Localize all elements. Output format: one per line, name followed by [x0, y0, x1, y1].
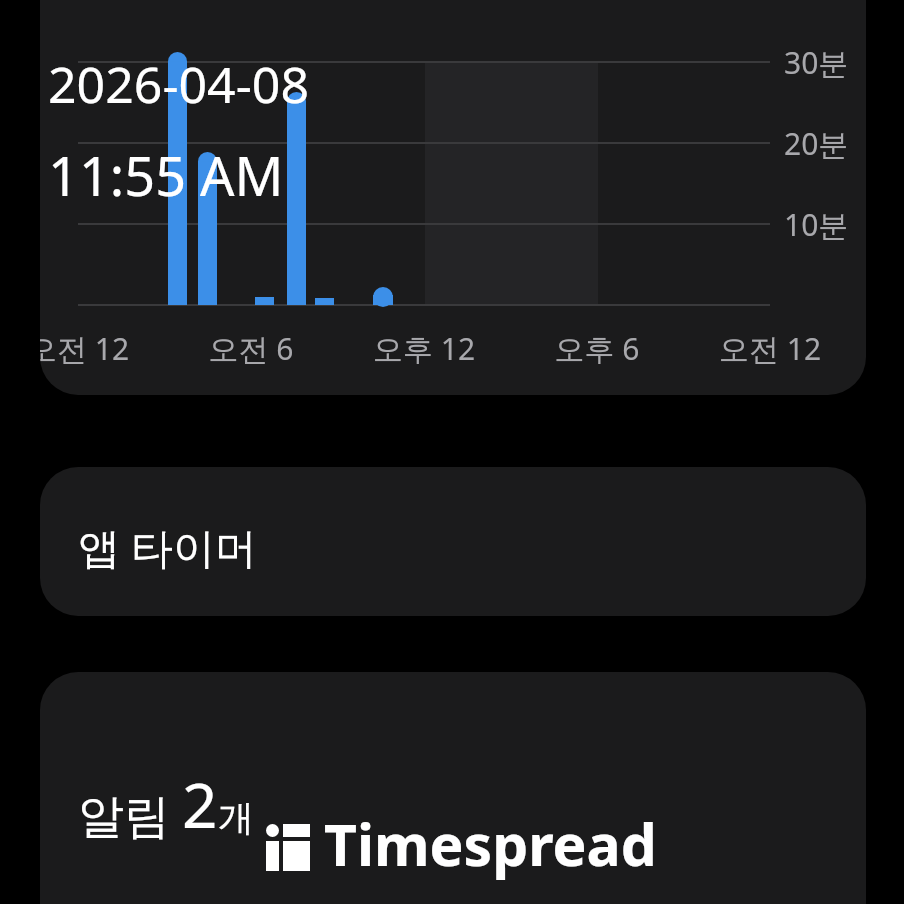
staticText: 앱 타이머: [78, 518, 257, 575]
staticText: 30분: [784, 42, 849, 83]
staticText: 오후 12: [359, 328, 489, 369]
staticText: 오전 12: [705, 328, 835, 369]
other: Timespread: [266, 824, 310, 871]
button[interactable]: 30분: [40, 0, 866, 395]
staticText: 알림: [78, 783, 182, 846]
staticText: 2026-04-08: [48, 50, 309, 118]
staticText: 2: [182, 762, 218, 846]
staticText: 개: [218, 795, 254, 840]
staticText: 오전 6: [186, 328, 316, 369]
staticText: 오후 6: [532, 328, 662, 369]
staticText: 20분: [784, 123, 849, 164]
button[interactable]: 알림: [40, 672, 866, 904]
button[interactable]: 앱 타이머: [40, 467, 866, 616]
staticText: Timespread: [324, 805, 657, 883]
staticText: 오전 12: [40, 328, 143, 369]
staticText: 10분: [784, 204, 849, 245]
staticText: 11:55 AM: [48, 138, 284, 212]
